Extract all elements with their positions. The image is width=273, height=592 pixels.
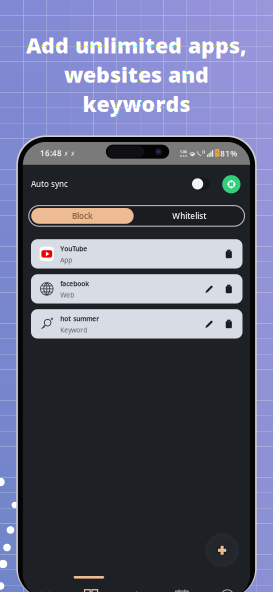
button[interactable]: hot summer — [31, 309, 242, 338]
staticText: 81% — [220, 148, 237, 159]
button[interactable]: Block — [31, 208, 134, 224]
staticText: YouTube — [60, 244, 87, 253]
button[interactable]: YouTube — [31, 239, 242, 268]
button[interactable]: Blocking — [23, 584, 68, 592]
staticText: facebook — [60, 279, 89, 288]
button[interactable]: Auto sync — [191, 178, 210, 190]
staticText: 16:48 — [40, 148, 62, 158]
staticText: websites and — [64, 60, 209, 89]
button[interactable]: Add item — [205, 533, 239, 567]
button[interactable]: Apps — [68, 584, 114, 592]
staticText: MB/S — [180, 154, 187, 158]
staticText: App — [60, 256, 72, 264]
staticText: 1.00 — [180, 149, 187, 154]
staticText: Keyword — [60, 326, 87, 334]
staticText: Whitelist — [172, 211, 206, 221]
button[interactable]: Statistics — [114, 584, 159, 592]
staticText: hot summer — [60, 314, 99, 323]
staticText: Add unlimited apps, — [26, 31, 247, 59]
button[interactable]: Schedule — [159, 584, 205, 592]
button[interactable]: Settings — [205, 584, 250, 592]
staticText: Auto sync — [31, 179, 68, 189]
button[interactable]: Whitelist — [137, 208, 242, 224]
button[interactable]: Sync now — [222, 175, 240, 193]
button[interactable]: facebook — [31, 274, 242, 303]
staticText: Web — [60, 291, 74, 299]
staticText: Block — [72, 211, 93, 221]
staticText: keywords — [82, 90, 190, 118]
